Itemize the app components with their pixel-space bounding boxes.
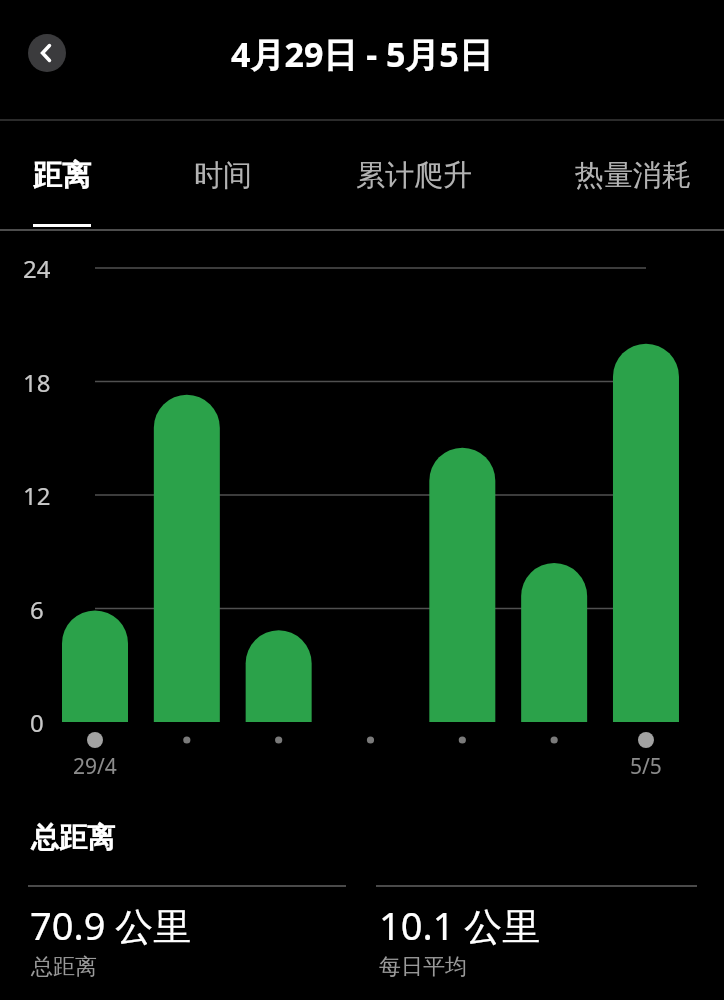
button[interactable]: 距离 [33, 121, 91, 229]
button[interactable]: 时间 [194, 121, 252, 229]
staticText: 18 [23, 366, 51, 398]
button[interactable]: 热量消耗 [575, 121, 691, 229]
staticText: 总距离 [31, 820, 115, 855]
staticText: 0 [30, 706, 44, 738]
staticText: 距离 [33, 157, 91, 194]
staticText: 总距离 [31, 953, 97, 981]
staticText: 6 [30, 593, 44, 625]
button[interactable]: 累计爬升 [356, 121, 472, 229]
staticText: 4月29日 - 5月5日 [231, 31, 493, 77]
staticText: 29/4 [73, 752, 117, 780]
button[interactable] [28, 34, 66, 72]
staticText: 5/5 [630, 752, 662, 780]
staticText: 热量消耗 [575, 157, 691, 194]
staticText: 24 [23, 252, 51, 284]
staticText: 10.1 公里 [379, 899, 541, 951]
staticText: 每日平均 [379, 953, 467, 981]
staticText: 70.9 公里 [30, 899, 192, 951]
staticText: 12 [23, 479, 51, 511]
staticText: 累计爬升 [356, 157, 472, 194]
staticText: 时间 [194, 157, 252, 194]
